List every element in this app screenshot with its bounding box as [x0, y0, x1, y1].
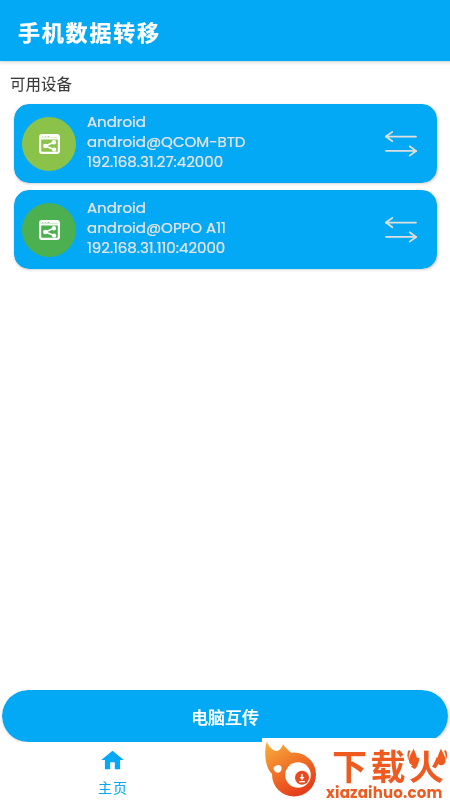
staticText: 可用设备	[10, 72, 73, 94]
staticText: 手机数据转移	[18, 15, 161, 47]
button[interactable]: Android	[14, 104, 437, 183]
staticText: 下载火	[332, 739, 448, 790]
button[interactable]: 主页	[0, 742, 225, 800]
button[interactable]: Android	[14, 190, 437, 269]
staticText: 电脑互传	[191, 704, 259, 729]
staticText: xiazaihuo.com	[326, 782, 450, 800]
button[interactable]: 电脑互传	[2, 690, 448, 742]
other: Transfer files	[386, 218, 416, 242]
staticText: android@OPPO A11	[87, 217, 226, 237]
staticText: 192.168.31.27:42000	[87, 151, 224, 171]
other: Transfer files	[386, 132, 416, 156]
staticText: android@QCOM-BTD	[87, 131, 246, 151]
staticText: 主页	[98, 777, 128, 797]
staticText: Android	[87, 197, 146, 217]
staticText: Android	[87, 111, 146, 131]
staticText: 192.168.31.110:42000	[87, 237, 226, 257]
